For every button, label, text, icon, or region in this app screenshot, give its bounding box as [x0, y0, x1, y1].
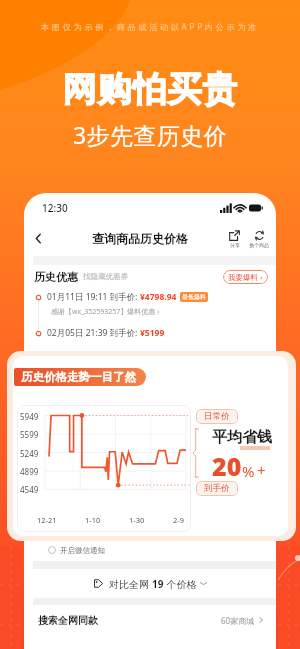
staticText: 分享 [230, 242, 240, 248]
staticText: 开启微信通知 [60, 546, 105, 555]
staticText: 60家商城 [221, 615, 255, 626]
staticText: 网购怕买贵 [0, 68, 300, 111]
staticText: ¥5199 [140, 327, 165, 339]
staticText: 找隐藏优惠券 [83, 272, 128, 281]
staticText: 12-21 [37, 515, 57, 525]
staticText: 搜索全网同款 [38, 614, 98, 627]
staticText: 对比全网 [109, 577, 152, 591]
button[interactable]: 搜索全网同款 [38, 605, 264, 635]
staticText: 个价格 [164, 577, 197, 591]
staticText: 01月11日 19:11 到手价: [47, 291, 138, 303]
staticText: 换个商品 [249, 242, 269, 248]
staticText: 到手价 [204, 483, 230, 494]
staticText: 4899 [20, 466, 39, 477]
staticText: 19 [152, 577, 164, 591]
button[interactable]: 开启微信通知 [48, 539, 276, 561]
staticText: 3步先查历史价 [0, 119, 300, 150]
staticText: 查询商品历史价格 [92, 231, 188, 246]
staticText: 历史价格走势一目了然 [21, 370, 136, 384]
staticText: 5949 [20, 411, 39, 422]
button[interactable]: 分享 [228, 230, 241, 248]
staticText: 日常价 [204, 411, 230, 422]
staticText: 4549 [20, 484, 39, 495]
staticText: 5249 [20, 448, 39, 459]
staticText: 历史优惠 [34, 270, 78, 284]
staticText: 2-9 [173, 515, 184, 525]
button[interactable]: 对比全网 [24, 569, 276, 598]
staticText: 本图仅为示例，商品或活动以APP内公示为准 [0, 21, 300, 32]
staticText: 02月05日 21:39 到手价: [47, 327, 138, 339]
staticText: 我要爆料 › [228, 272, 263, 282]
staticText: 1-10 [85, 515, 101, 525]
button[interactable]: 返回 [26, 226, 50, 250]
staticText: 最低爆料 [182, 293, 206, 301]
staticText: 20 [212, 449, 242, 483]
staticText: 12:30 [42, 201, 68, 215]
button[interactable]: 换个商品 [248, 230, 270, 248]
staticText: % [242, 461, 255, 481]
staticText: 5599 [20, 429, 39, 440]
staticText: + [257, 460, 266, 480]
staticText: 感谢【wx_352593257】爆料优惠 › [51, 307, 160, 317]
staticText: ¥4798.94 [140, 291, 177, 303]
staticText: 1-30 [129, 515, 145, 525]
button[interactable]: 我要爆料 › [223, 270, 268, 284]
staticText: 平均省钱 [212, 428, 272, 447]
